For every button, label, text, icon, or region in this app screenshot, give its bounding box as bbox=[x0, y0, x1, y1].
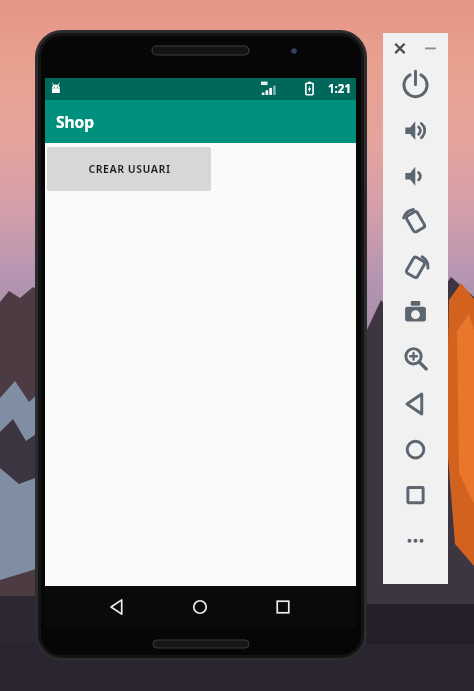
button[interactable]: CREAR USUARI bbox=[47, 147, 211, 191]
staticText: Shop bbox=[56, 111, 95, 132]
button[interactable]: Overview bbox=[389, 475, 442, 515]
button[interactable]: Minimize bbox=[416, 37, 446, 63]
button[interactable]: Zoom bbox=[389, 338, 442, 378]
button[interactable]: Back bbox=[389, 384, 442, 424]
staticText: 1:21 bbox=[328, 81, 351, 97]
button[interactable]: Rotate right bbox=[389, 247, 442, 287]
button[interactable]: Home bbox=[176, 586, 226, 628]
button[interactable]: Power bbox=[389, 65, 442, 105]
button[interactable]: Take screenshot bbox=[389, 293, 442, 333]
button[interactable]: Back bbox=[85, 586, 135, 628]
staticText: CREAR USUARI bbox=[88, 162, 171, 176]
button[interactable]: Recent apps bbox=[266, 586, 316, 628]
button[interactable]: Rotate left bbox=[389, 202, 442, 242]
button[interactable]: More bbox=[389, 520, 442, 560]
button[interactable]: Volume up bbox=[389, 111, 442, 151]
button[interactable]: Close bbox=[385, 37, 415, 63]
button[interactable]: Home bbox=[389, 429, 442, 469]
button[interactable]: Volume down bbox=[389, 156, 442, 196]
